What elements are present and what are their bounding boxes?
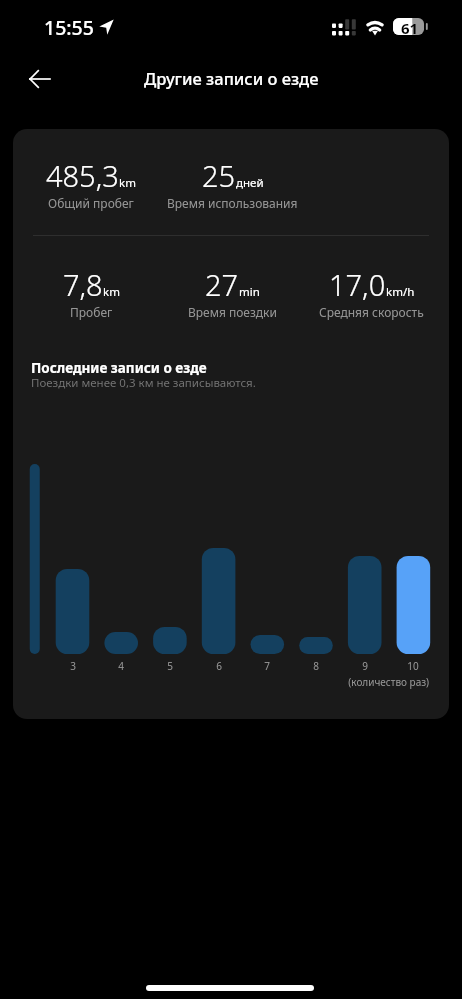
staticText: 3: [53, 659, 93, 673]
button[interactable]: Back: [16, 55, 64, 103]
staticText: 7: [247, 659, 287, 673]
staticText: min: [239, 284, 260, 300]
staticText: km: [103, 284, 120, 300]
staticText: 6: [199, 659, 239, 673]
staticText: Другие записи о езде: [144, 67, 319, 89]
staticText: 8: [296, 659, 336, 673]
staticText: 17,0: [329, 265, 386, 304]
staticText: Время использования: [167, 195, 298, 211]
staticText: Пробег: [70, 304, 113, 320]
staticText: 4: [101, 659, 141, 673]
staticText: Время поездки: [188, 304, 277, 320]
staticText: km: [119, 175, 136, 191]
staticText: 485,3: [46, 156, 119, 195]
staticText: 9: [345, 659, 385, 673]
staticText: (количество раз): [329, 675, 429, 689]
staticText: 5: [150, 659, 190, 673]
staticText: 15:55: [44, 14, 94, 41]
staticText: 10: [393, 659, 433, 673]
staticText: дней: [236, 175, 264, 191]
staticText: Поездки менее 0,3 км не записываются.: [31, 375, 256, 391]
staticText: 7,8: [63, 265, 103, 304]
staticText: km/h: [386, 284, 415, 300]
staticText: Общий пробег: [48, 195, 134, 211]
staticText: 61: [401, 18, 419, 35]
staticText: Средняя скорость: [319, 304, 424, 320]
staticText: Последние записи о езде: [31, 359, 207, 377]
staticText: 27: [205, 265, 239, 304]
staticText: 25: [202, 156, 236, 195]
